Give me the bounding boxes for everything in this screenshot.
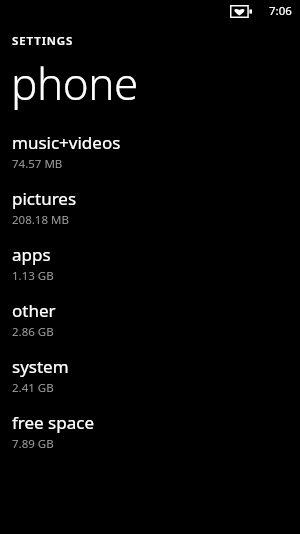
- button[interactable]: apps: [0, 243, 300, 299]
- button[interactable]: other: [0, 299, 300, 355]
- staticText: 2.86 GB: [12, 324, 54, 340]
- staticText: 2.41 GB: [12, 380, 54, 396]
- button[interactable]: pictures: [0, 187, 300, 243]
- staticText: 7.89 GB: [12, 436, 54, 452]
- staticText: apps: [12, 243, 51, 266]
- staticText: phone: [11, 53, 138, 113]
- staticText: free space: [12, 411, 95, 434]
- staticText: other: [12, 299, 56, 322]
- staticText: pictures: [12, 187, 77, 210]
- staticText: 208.18 MB: [12, 212, 69, 228]
- staticText: 74.57 MB: [12, 156, 63, 172]
- staticText: 7:06: [269, 3, 292, 19]
- button[interactable]: music+videos: [0, 131, 300, 187]
- staticText: music+videos: [12, 131, 121, 154]
- button[interactable]: free space: [0, 411, 300, 467]
- staticText: system: [12, 355, 69, 378]
- button[interactable]: system: [0, 355, 300, 411]
- staticText: 1.13 GB: [12, 268, 54, 284]
- other: Battery saver on: [230, 5, 252, 18]
- staticText: SETTINGS: [12, 33, 74, 49]
